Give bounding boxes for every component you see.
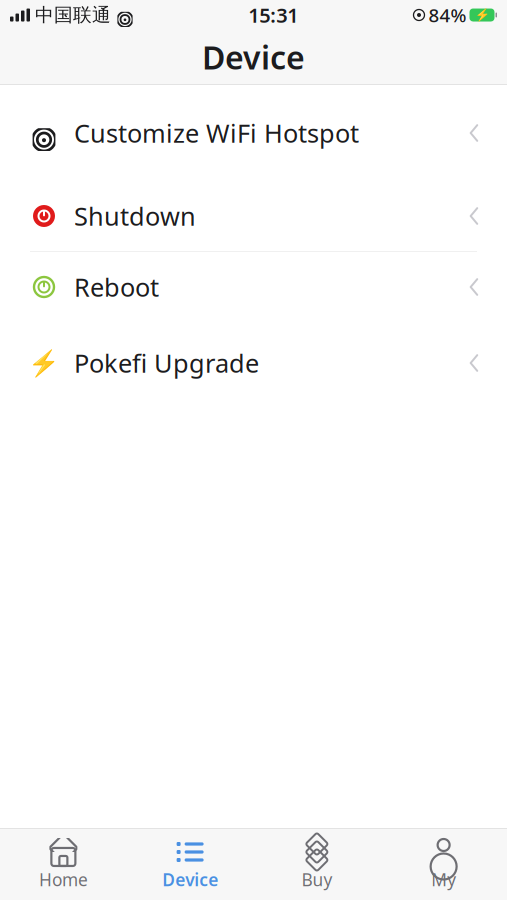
button[interactable]: Shutdown <box>0 181 507 251</box>
staticText: Reboot <box>74 270 159 304</box>
button[interactable]: Reboot <box>0 252 507 322</box>
staticText: 中国联通 <box>35 3 111 26</box>
staticText: Device <box>202 36 305 78</box>
staticText: ⚡ <box>28 348 60 377</box>
button[interactable]: Buy <box>253 829 380 900</box>
button[interactable]: My <box>380 829 507 900</box>
button[interactable]: Customize WiFi Hotspot <box>0 85 507 181</box>
staticText: Pokefi Upgrade <box>74 346 259 380</box>
staticText: Device <box>162 868 218 891</box>
staticText: Shutdown <box>74 199 196 233</box>
staticText: 84% <box>428 3 466 27</box>
staticText: 15:31 <box>248 2 298 28</box>
staticText: Home <box>39 868 88 891</box>
staticText: Customize WiFi Hotspot <box>74 116 359 150</box>
button[interactable]: Home <box>0 829 127 900</box>
button[interactable]: Device <box>127 829 254 900</box>
staticText: My <box>431 868 456 891</box>
staticText: ⚡ <box>474 8 489 22</box>
staticText: Buy <box>301 868 332 891</box>
button[interactable]: ⚡ <box>0 322 507 404</box>
